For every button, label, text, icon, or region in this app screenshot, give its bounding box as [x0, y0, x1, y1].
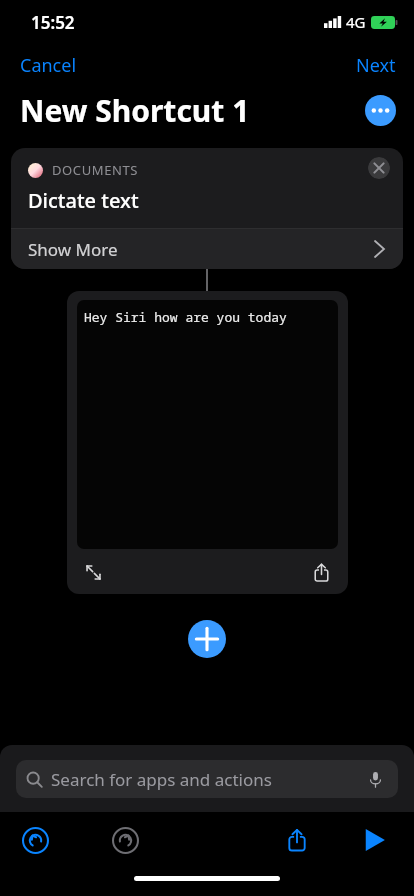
staticText: Show More	[28, 238, 118, 261]
button[interactable]: Hey Siri how are you today	[67, 291, 348, 594]
button[interactable]: Next	[338, 47, 414, 84]
staticText: Next	[356, 53, 396, 78]
staticText: Search for apps and actions	[51, 768, 272, 791]
button[interactable]: Search for apps and actions	[16, 760, 398, 798]
staticText: Dictate text	[28, 187, 139, 214]
staticText: 15:52	[31, 11, 75, 34]
button[interactable]: Cancel	[0, 47, 97, 84]
button[interactable]: Add action	[188, 620, 226, 658]
button[interactable]: Remove action	[368, 157, 390, 179]
button[interactable]: More options	[365, 95, 396, 126]
button[interactable]: Redo	[107, 822, 143, 858]
button[interactable]: Expand	[78, 557, 108, 587]
staticText: 4G	[346, 12, 366, 32]
button[interactable]: Share text	[306, 557, 336, 587]
staticText: New Shortcut 1	[20, 90, 250, 131]
button[interactable]: Share shortcut	[278, 821, 316, 859]
staticText: DOCUMENTS	[52, 161, 139, 179]
button[interactable]: Show More	[11, 229, 403, 269]
button[interactable]: Undo	[17, 822, 53, 858]
button[interactable]: Run shortcut	[358, 823, 392, 857]
button[interactable]: Voice search	[364, 768, 386, 790]
staticText: Cancel	[20, 53, 77, 78]
staticText: Hey Siri how are you today	[84, 308, 287, 326]
button[interactable]: DOCUMENTS	[11, 148, 403, 228]
